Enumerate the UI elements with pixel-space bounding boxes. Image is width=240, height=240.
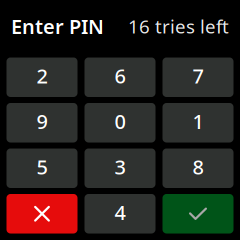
button[interactable]: Confirm: [162, 194, 233, 233]
button[interactable]: 8: [162, 148, 233, 188]
staticText: 2: [36, 62, 47, 89]
staticText: Enter PIN: [11, 13, 104, 40]
staticText: 7: [192, 62, 203, 89]
button[interactable]: 1: [162, 103, 233, 142]
staticText: 5: [36, 153, 47, 180]
button[interactable]: 6: [84, 57, 155, 97]
staticText: 3: [114, 153, 125, 180]
staticText: 0: [114, 108, 125, 135]
button[interactable]: 4: [84, 194, 155, 233]
button[interactable]: 3: [84, 148, 155, 188]
button[interactable]: 9: [6, 103, 77, 142]
staticText: 16 tries left: [128, 14, 229, 39]
button[interactable]: 0: [84, 103, 155, 142]
staticText: 9: [36, 108, 47, 135]
button[interactable]: 2: [6, 57, 77, 97]
staticText: 8: [192, 153, 203, 180]
button[interactable]: 7: [162, 57, 233, 97]
staticText: 4: [114, 199, 125, 226]
button[interactable]: 5: [6, 148, 77, 188]
button[interactable]: Delete: [6, 194, 77, 233]
staticText: 6: [114, 62, 125, 89]
staticText: 1: [192, 108, 203, 135]
